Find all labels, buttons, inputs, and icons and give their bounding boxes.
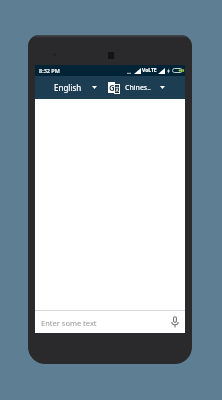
staticText: Enter some text — [41, 318, 97, 328]
staticText: English — [54, 82, 82, 93]
button[interactable]: Swap languages — [101, 76, 123, 99]
button[interactable]: Chines.. — [121, 76, 185, 99]
staticText: G — [109, 82, 115, 93]
staticText: Chines.. — [125, 83, 151, 93]
button[interactable]: Enter some text — [35, 311, 165, 333]
staticText: 8:32 PM — [39, 67, 60, 74]
staticText: VoLTE — [142, 67, 157, 74]
button[interactable]: English — [35, 76, 101, 99]
button[interactable]: Voice input — [167, 314, 183, 330]
